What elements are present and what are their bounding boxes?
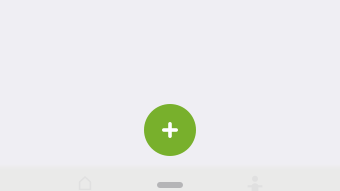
button[interactable]: Profile bbox=[170, 166, 340, 191]
button[interactable]: Home bbox=[0, 166, 170, 191]
button[interactable]: Create bbox=[144, 104, 196, 156]
